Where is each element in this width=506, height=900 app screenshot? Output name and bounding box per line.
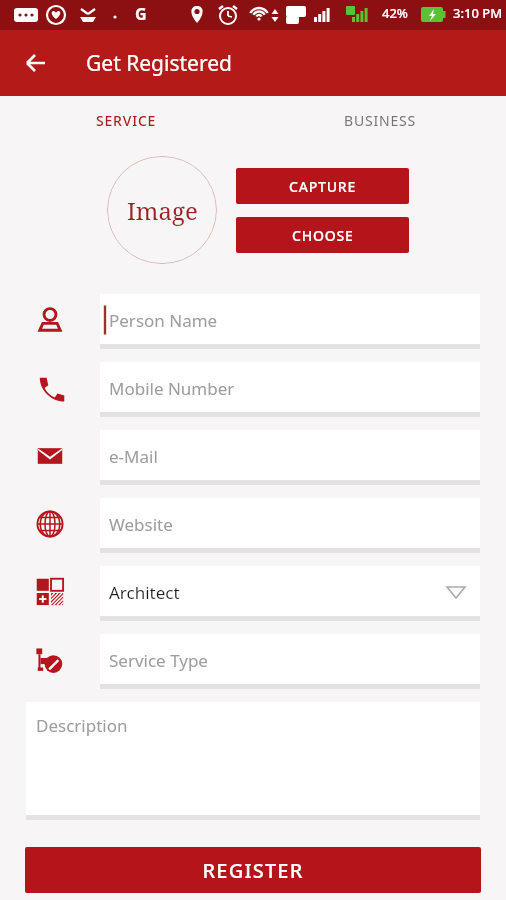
staticText: SERVICE [96,111,157,130]
button[interactable]: Image [107,156,217,264]
staticText: e-Mail [109,445,158,468]
staticText: Service Type [109,649,208,672]
button[interactable]: Description [26,702,480,817]
button[interactable]: Service Type [100,634,480,686]
staticText: 3:10 PM [453,4,506,22]
staticText: CAPTURE [289,177,357,196]
button[interactable]: CHOOSE [236,217,409,253]
staticText: REGISTER [202,857,304,884]
button[interactable]: SERVICE [0,96,253,144]
button[interactable]: e-Mail [100,430,480,482]
button[interactable]: Mobile Number [100,362,480,414]
staticText: 42% [382,4,408,22]
staticText: Mobile Number [109,377,235,400]
button[interactable]: Website [100,498,480,550]
button[interactable]: BUSINESS [253,96,506,144]
staticText: Description [36,714,128,737]
staticText: G [135,3,147,25]
button[interactable]: CAPTURE [236,168,409,204]
staticText: Get Registered [86,49,232,78]
staticText: BUSINESS [344,111,416,130]
button[interactable]: Person Name [100,294,480,346]
button[interactable]: Back [14,41,58,85]
staticText: Person Name [109,309,218,332]
staticText: Website [109,513,173,536]
staticText: Architect [109,581,180,604]
staticText: Image [127,194,198,227]
button[interactable]: REGISTER [25,847,481,893]
staticText: CHOOSE [292,226,354,245]
button[interactable]: Architect [100,566,480,618]
